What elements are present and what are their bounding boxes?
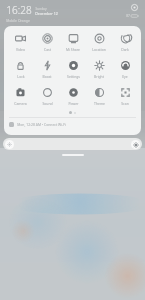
- button[interactable]: Cast: [34, 31, 60, 53]
- staticText: Cast: [44, 47, 51, 52]
- staticText: Mobile Orange: [6, 18, 30, 23]
- button[interactable]: Settings: [60, 58, 86, 80]
- button[interactable]: Scan QR code: [112, 85, 138, 107]
- staticText: Eye: [122, 74, 128, 79]
- staticText: Dark: [121, 47, 129, 52]
- staticText: Theme: [94, 101, 105, 106]
- button[interactable]: Battery saver: [60, 85, 86, 107]
- staticText: 87: [126, 14, 130, 18]
- staticText: Scan: [121, 101, 129, 106]
- staticText: Boost: [42, 74, 52, 79]
- button[interactable]: Sound mode: [34, 85, 60, 107]
- button[interactable]: Screen recorder: [7, 31, 34, 53]
- button[interactable]: Dark mode: [112, 31, 138, 53]
- staticText: Settings: [67, 74, 80, 79]
- button[interactable]: Theme: [86, 85, 112, 107]
- staticText: Mi Share: [66, 47, 80, 52]
- button[interactable]: Game booster: [34, 58, 60, 80]
- button[interactable]: Mi Share: [60, 31, 86, 53]
- staticText: Sound: [42, 101, 53, 106]
- button[interactable]: Eye comfort: [112, 58, 138, 80]
- staticText: Bright: [94, 74, 104, 79]
- staticText: Power: [68, 101, 79, 106]
- button[interactable]: Location: [86, 31, 112, 53]
- staticText: Lock: [17, 74, 25, 79]
- staticText: Camera: [14, 101, 27, 106]
- button[interactable]: Mon, 12:28 AM • Connect Wi-Fi: [7, 121, 138, 128]
- button[interactable]: Screen lock: [7, 58, 34, 80]
- staticText: Location: [92, 47, 106, 52]
- staticText: Sunday: [35, 7, 47, 11]
- staticText: 16:28: [6, 3, 32, 17]
- button[interactable]: Brightness: [3, 138, 142, 150]
- staticText: Mon, 12:28 AM • Connect Wi-Fi: [17, 122, 66, 127]
- button[interactable]: Reading mode: [86, 58, 112, 80]
- staticText: Video: [16, 47, 25, 52]
- staticText: December 12: [35, 11, 58, 16]
- button[interactable]: Camera: [7, 85, 34, 107]
- button[interactable]: Settings: [130, 3, 139, 12]
